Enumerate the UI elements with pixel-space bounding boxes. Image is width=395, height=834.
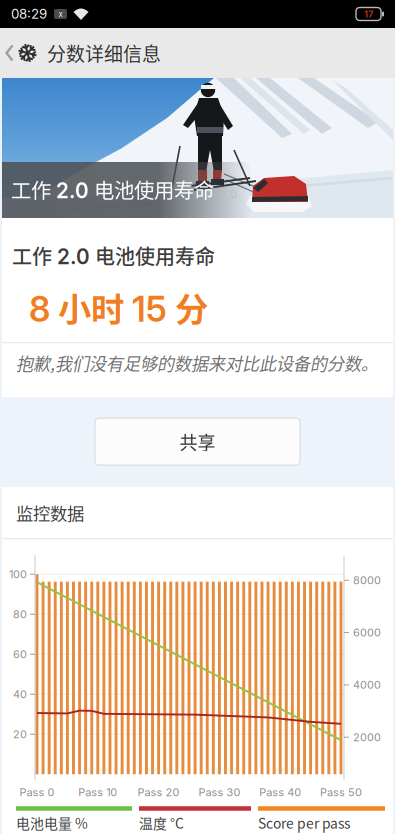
staticText: 2.0 bbox=[57, 244, 90, 269]
staticText: Score per pass bbox=[258, 813, 350, 833]
staticText: 抱歉,我们没有足够的数据来对比此设备的分数。 bbox=[16, 350, 378, 375]
staticText: 分数详细信息 bbox=[47, 39, 161, 67]
staticText: 17 bbox=[364, 8, 373, 20]
staticText: 100 bbox=[9, 568, 27, 581]
staticText: 6000 bbox=[353, 626, 381, 639]
staticText: 2.0 bbox=[214, 187, 237, 201]
staticText: 2.0 bbox=[56, 178, 89, 203]
staticText: 2000 bbox=[353, 731, 381, 744]
staticText: Pass 50 bbox=[320, 786, 362, 799]
staticText: 80 bbox=[13, 608, 27, 621]
staticText: Pass 10 bbox=[78, 786, 117, 799]
staticText: Pass 0 bbox=[19, 786, 54, 799]
staticText: Pass 20 bbox=[138, 786, 180, 799]
staticText: 电池使用寿命 bbox=[89, 174, 214, 204]
staticText: 温度 °C bbox=[139, 813, 184, 833]
staticText: x bbox=[58, 9, 62, 19]
staticText: 工作 bbox=[12, 241, 57, 270]
staticText: 20 bbox=[13, 728, 27, 741]
staticText: 08:29 bbox=[11, 6, 47, 22]
staticText: 共享 bbox=[179, 429, 215, 455]
staticText: 40 bbox=[13, 688, 27, 701]
staticText: 15 bbox=[132, 288, 175, 330]
staticText: 工作 bbox=[11, 174, 56, 204]
button[interactable]: Back bbox=[0, 28, 40, 78]
staticText: 电池使用寿命 bbox=[90, 241, 215, 270]
staticText: 小时 bbox=[58, 283, 132, 331]
staticText: 60 bbox=[13, 648, 27, 661]
staticText: Pass 30 bbox=[198, 786, 240, 799]
staticText: 8000 bbox=[353, 574, 381, 587]
staticText: 分 bbox=[175, 283, 208, 331]
staticText: 8 bbox=[29, 288, 58, 330]
staticText: 监控数据 bbox=[16, 500, 84, 525]
staticText: 电池电量 % bbox=[16, 813, 88, 833]
staticText: Pass 40 bbox=[259, 786, 301, 799]
staticText: 4000 bbox=[353, 678, 381, 691]
button[interactable]: 共享 bbox=[95, 418, 300, 465]
